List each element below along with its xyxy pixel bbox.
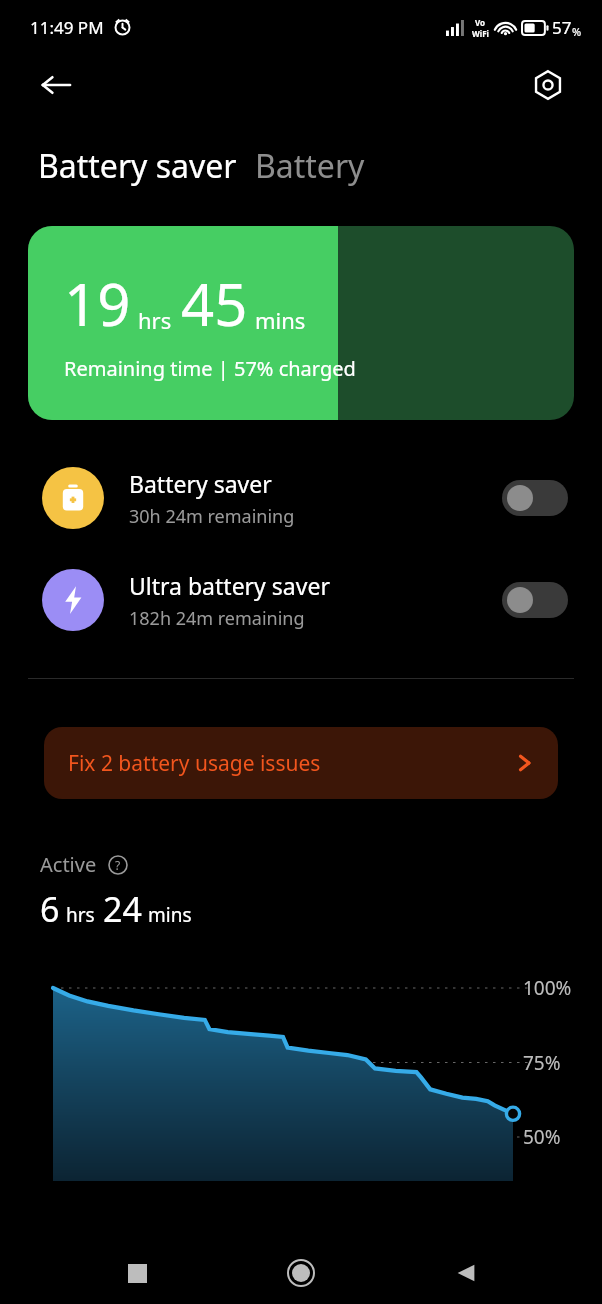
button[interactable]: Battery xyxy=(255,144,365,188)
button[interactable]: 19 xyxy=(28,226,574,420)
button[interactable]: Help xyxy=(107,854,129,876)
button[interactable]: Back xyxy=(30,59,82,111)
staticText: Fix 2 battery usage issues xyxy=(68,749,321,778)
staticText: 182h 24m remaining xyxy=(129,606,305,631)
staticText: 11:49 PM xyxy=(30,16,104,39)
staticText: Battery saver xyxy=(129,468,272,499)
staticText: Remaining time | 57% charged xyxy=(64,355,356,382)
button[interactable]: Ultra battery saver xyxy=(0,569,602,631)
staticText: WiFi xyxy=(472,28,489,39)
staticText: Battery xyxy=(255,144,365,188)
staticText: mins xyxy=(148,902,192,928)
button[interactable]: Home xyxy=(273,1245,329,1301)
staticText: Ultra battery saver xyxy=(129,570,330,601)
staticText: Vo xyxy=(475,17,486,28)
staticText: 6 xyxy=(40,886,60,932)
staticText: 100% xyxy=(523,975,572,1001)
staticText: 24 xyxy=(103,886,142,932)
staticText: Battery saver xyxy=(38,144,237,188)
button[interactable]: Fix 2 battery usage issues xyxy=(44,727,558,799)
staticText: mins xyxy=(255,305,306,335)
staticText: 57 xyxy=(552,16,572,39)
button[interactable]: Ultra battery saver toggle xyxy=(502,582,568,618)
staticText: Active xyxy=(40,851,97,878)
button[interactable]: Back xyxy=(438,1245,494,1301)
staticText: 45 xyxy=(181,264,248,343)
button[interactable]: Battery saver toggle xyxy=(502,480,568,516)
staticText: % xyxy=(572,24,582,39)
staticText: 50% xyxy=(523,1124,561,1150)
staticText: 19 xyxy=(64,264,131,343)
staticText: 30h 24m remaining xyxy=(129,504,295,529)
button[interactable]: Settings xyxy=(524,61,572,109)
button[interactable]: Battery saver xyxy=(0,467,602,529)
button[interactable]: Recent apps xyxy=(109,1245,165,1301)
staticText: hrs xyxy=(138,305,172,335)
staticText: 75% xyxy=(523,1050,561,1076)
button[interactable]: Battery saver xyxy=(38,144,237,188)
staticText: ? xyxy=(115,857,121,873)
staticText: hrs xyxy=(66,902,95,928)
